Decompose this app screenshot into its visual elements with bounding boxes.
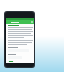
button[interactable]: Menu bbox=[6, 20, 34, 24]
button[interactable] bbox=[8, 61, 14, 62]
